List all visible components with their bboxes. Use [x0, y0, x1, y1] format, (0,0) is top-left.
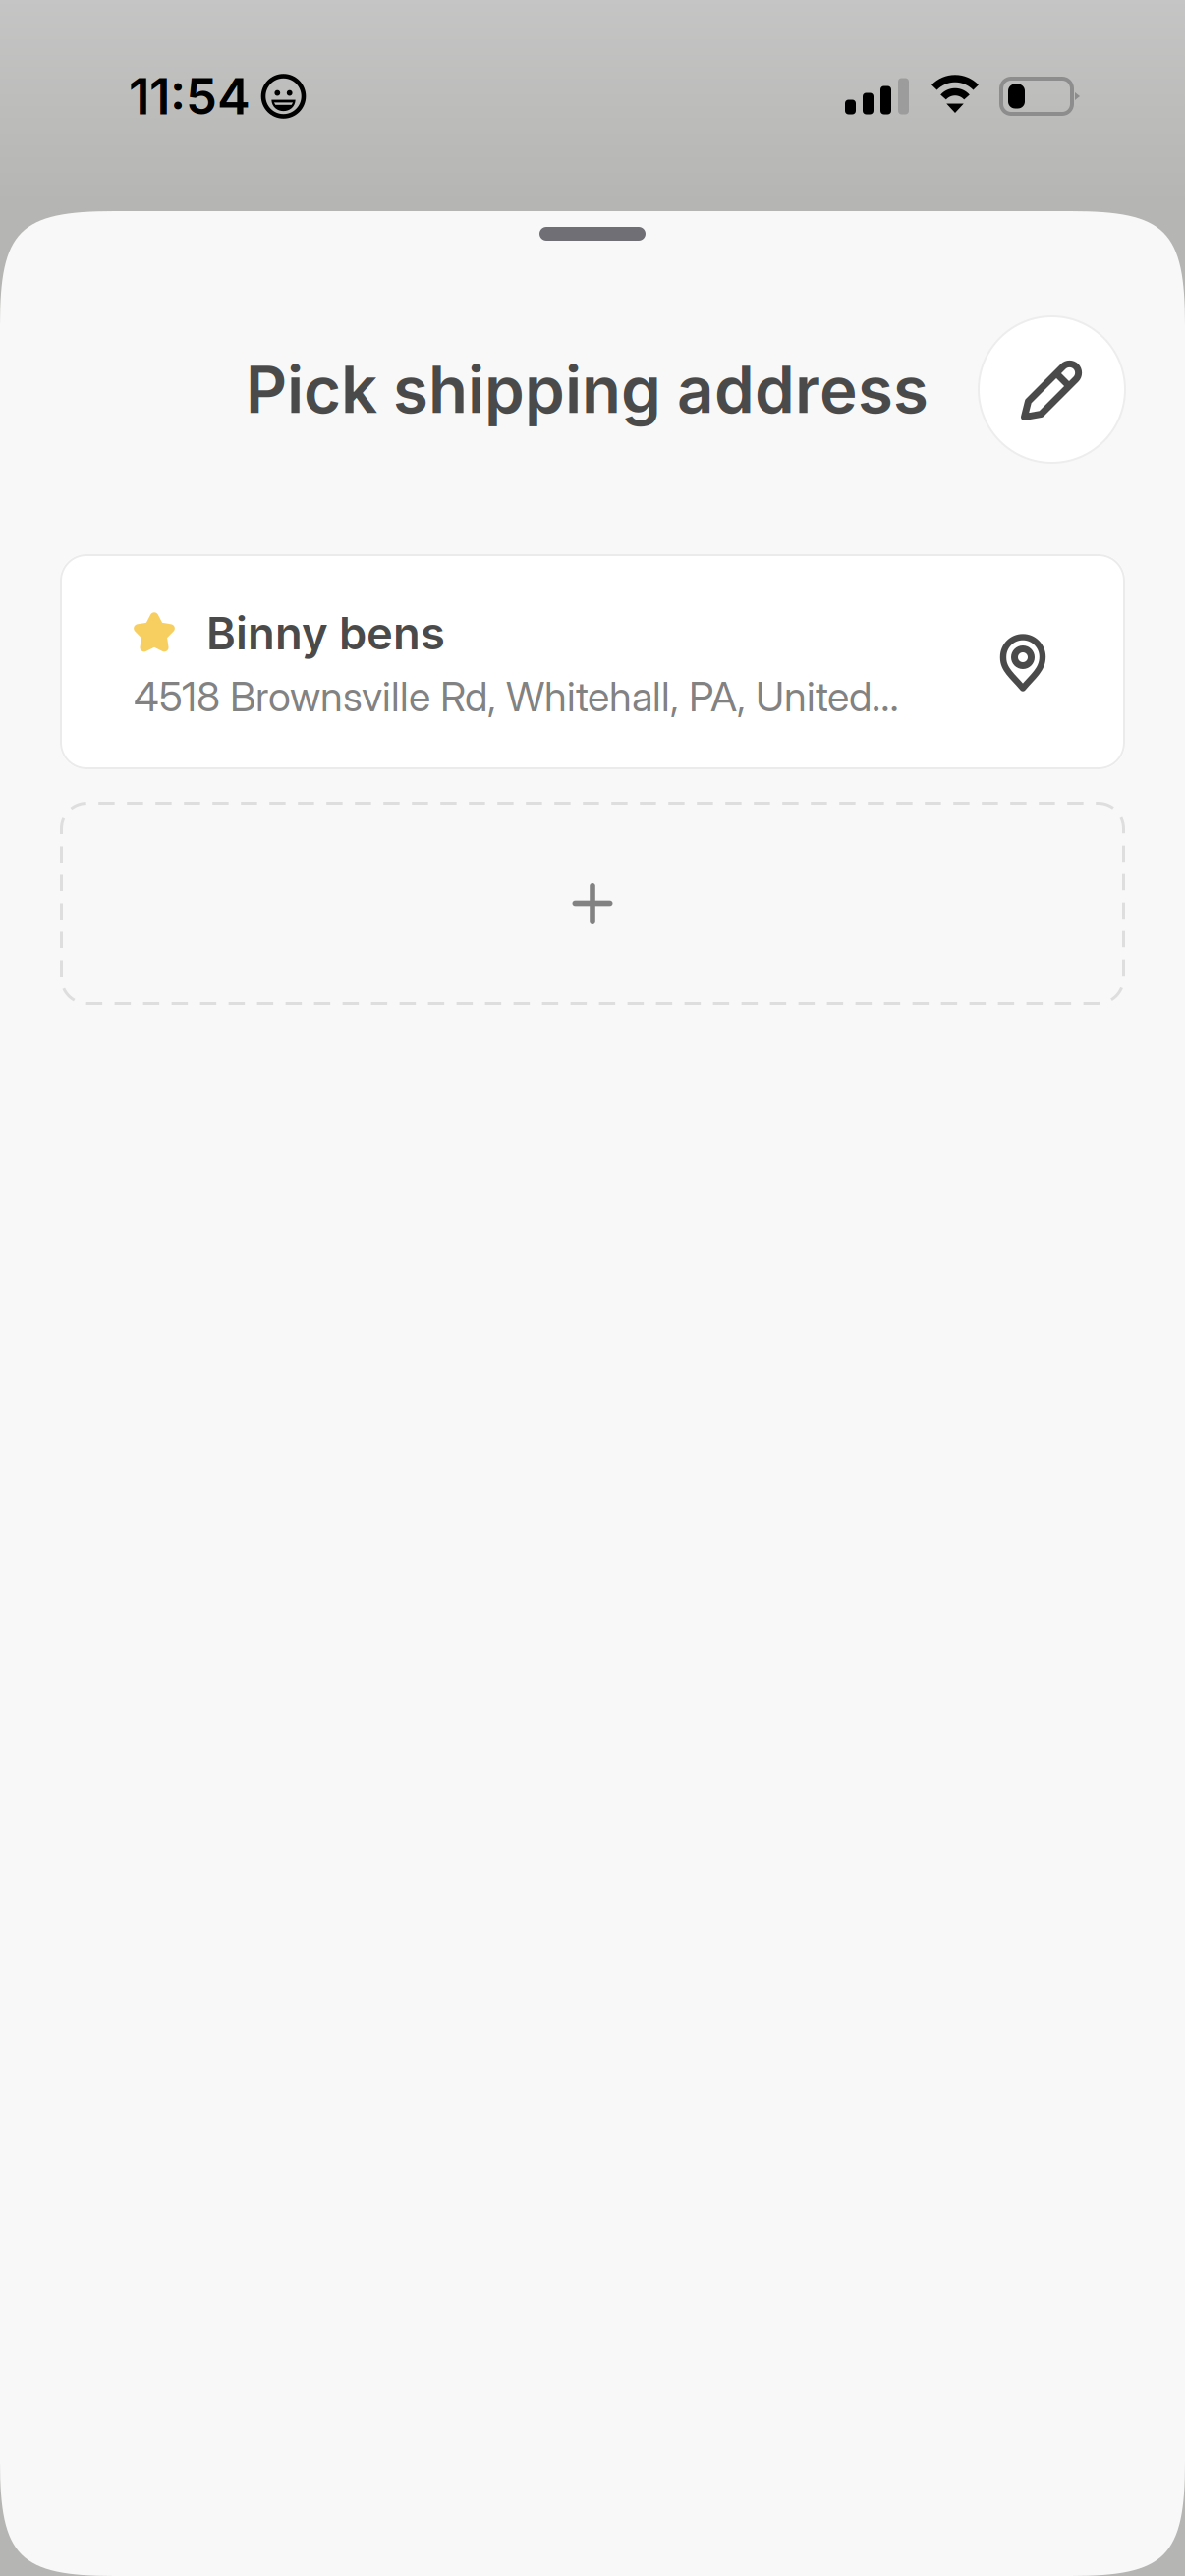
button[interactable]: Edit addresses	[979, 316, 1125, 463]
staticText: Binny bens	[206, 606, 445, 660]
button[interactable]: Binny bens	[60, 554, 1125, 769]
button[interactable]: Add a new address	[60, 802, 1125, 1005]
staticText: 11:54	[129, 66, 251, 126]
staticText: Pick shipping address	[246, 351, 929, 428]
staticText: 4518 Brownsville Rd, Whitehall, PA, Unit…	[134, 672, 899, 721]
